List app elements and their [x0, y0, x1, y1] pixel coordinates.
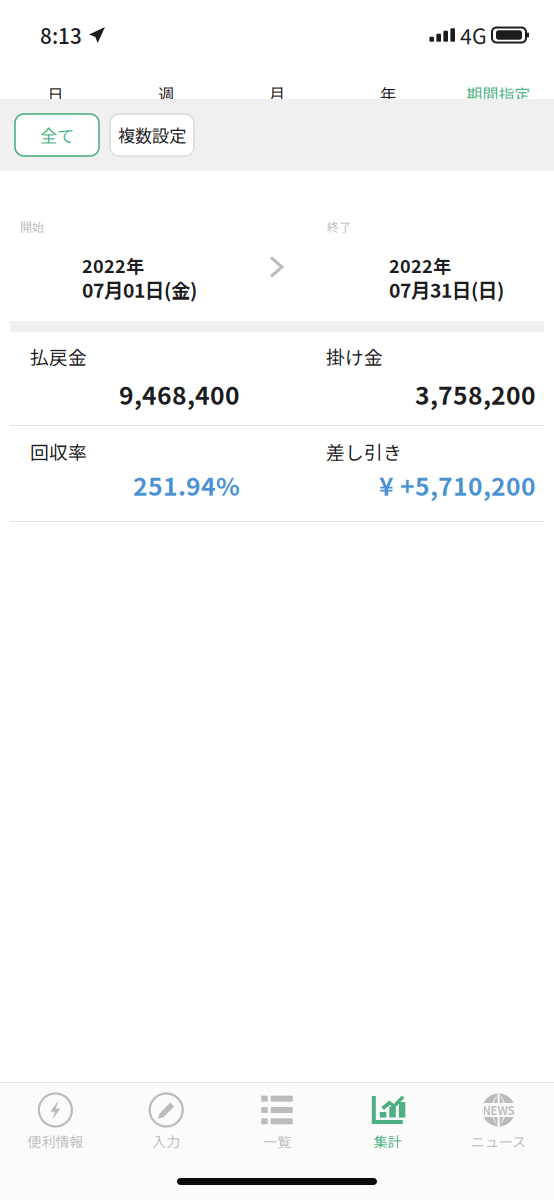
staticText: 入力	[152, 1131, 180, 1151]
button[interactable]: 入力	[111, 1083, 222, 1163]
staticText: 07月01日(金)	[82, 275, 197, 303]
staticText: 月	[269, 82, 285, 105]
staticText: 回収率	[30, 438, 87, 465]
staticText: 2022年	[389, 252, 451, 278]
button[interactable]: 日	[0, 70, 111, 99]
button[interactable]: 複数設定	[110, 114, 194, 156]
button[interactable]: 一覧	[222, 1083, 332, 1163]
staticText: 年	[380, 82, 396, 105]
staticText: 終了	[327, 218, 351, 235]
staticText: ¥ +5,710,200	[379, 467, 536, 503]
staticText: 3,758,200	[415, 376, 536, 412]
staticText: 差し引き	[326, 438, 402, 465]
staticText: 9,468,400	[119, 376, 240, 412]
staticText: 開始	[20, 218, 44, 235]
staticText: 2022年	[82, 252, 144, 278]
button[interactable]: NEWS	[443, 1083, 554, 1163]
staticText: 便利情報	[27, 1131, 83, 1151]
button[interactable]: 期間指定	[443, 70, 554, 99]
staticText: 07月31日(日)	[389, 275, 504, 303]
staticText: 全て	[40, 122, 74, 148]
button[interactable]: 集計	[332, 1083, 443, 1163]
staticText: 4G	[460, 20, 487, 50]
staticText: 払戻金	[30, 343, 87, 370]
staticText: 8:13	[40, 20, 82, 50]
button[interactable]: 終了	[327, 189, 504, 303]
button[interactable]: 全て	[15, 114, 99, 156]
staticText: 日	[47, 82, 63, 105]
staticText: ニュース	[471, 1131, 526, 1151]
button[interactable]: 週	[111, 70, 222, 99]
button[interactable]: 年	[332, 70, 443, 99]
staticText: NEWS	[483, 1102, 515, 1118]
button[interactable]: 便利情報	[0, 1083, 111, 1163]
staticText: 週	[158, 82, 174, 105]
staticText: 複数設定	[118, 122, 186, 148]
staticText: 一覧	[263, 1131, 291, 1151]
staticText: 期間指定	[467, 82, 531, 105]
staticText: 251.94%	[133, 467, 240, 503]
staticText: 集計	[374, 1131, 402, 1151]
button[interactable]: 月	[222, 70, 332, 99]
staticText: 掛け金	[326, 343, 383, 370]
button[interactable]: 開始	[20, 189, 197, 303]
